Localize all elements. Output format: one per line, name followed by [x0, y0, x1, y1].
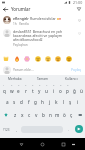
button[interactable]: Shift: [0, 108, 11, 121]
button[interactable]: Like comment: [77, 16, 82, 24]
button[interactable]: Recent apps: [59, 138, 68, 150]
button[interactable]: Share: [73, 5, 85, 13]
button[interactable]: ş: [67, 96, 74, 108]
staticText: ü: [80, 88, 83, 94]
button[interactable]: 4: [22, 83, 29, 96]
button[interactable]: b: [40, 108, 47, 121]
staticText: ç: [70, 112, 73, 118]
staticText: Kullanıcı: [65, 77, 78, 81]
button[interactable]: Emoji reaction: [24, 56, 30, 62]
staticText: 9: [60, 84, 62, 87]
button[interactable]: s: [11, 96, 18, 108]
button[interactable]: 9: [57, 83, 64, 96]
staticText: Tamam: [37, 77, 49, 81]
staticText: u: [45, 88, 48, 94]
staticText: w: [10, 88, 14, 94]
staticText: .: [68, 127, 69, 132]
button[interactable]: ü: [78, 83, 85, 96]
staticText: ğ: [73, 88, 76, 94]
button[interactable]: 8: [50, 83, 57, 96]
button[interactable]: 3: [15, 83, 22, 96]
staticText: Yorum ekle...: [13, 67, 71, 72]
button[interactable]: h: [39, 96, 46, 108]
button[interactable]: Yanıtla: [19, 22, 29, 26]
staticText: e: [17, 88, 20, 94]
staticText: f: [28, 99, 30, 105]
button[interactable]: x: [19, 108, 26, 121]
staticText: Merhaba: [8, 77, 22, 81]
button[interactable]: v: [33, 108, 40, 121]
button[interactable]: Emoji reaction: [45, 56, 51, 62]
button[interactable]: f: [25, 96, 32, 108]
button[interactable]: ğ: [71, 83, 78, 96]
button[interactable]: c: [26, 108, 33, 121]
button[interactable]: Like comment: [77, 29, 82, 37]
button[interactable]: Emoji reaction: [14, 56, 20, 62]
staticText: x: [21, 112, 24, 118]
staticText: ö: [63, 112, 66, 118]
button[interactable]: a: [4, 96, 11, 108]
button[interactable]: 0: [64, 83, 71, 96]
staticText: 21:00: [73, 0, 83, 5]
button[interactable]: Backspace: [75, 108, 85, 121]
staticText: eflengirlr: [13, 16, 29, 21]
button[interactable]: g: [32, 96, 39, 108]
button[interactable]: Back: [0, 5, 11, 13]
staticText: Yorumlar: [11, 6, 31, 12]
button[interactable]: n: [47, 108, 54, 121]
button[interactable]: 6: [36, 83, 43, 96]
button[interactable]: l: [60, 96, 67, 108]
button[interactable]: Tamam: [29, 75, 57, 83]
button[interactable]: Kullanıcı: [57, 75, 85, 83]
button[interactable]: j: [46, 96, 53, 108]
button[interactable]: Emoji reaction: [55, 56, 61, 62]
staticText: g: [34, 99, 37, 105]
staticText: deslan8551 Benachust en yoh kacandınas a…: [13, 29, 77, 42]
staticText: r: [25, 88, 27, 94]
staticText: 7: [46, 84, 48, 87]
button[interactable]: 2: [8, 83, 15, 96]
staticText: 8: [53, 84, 55, 87]
staticText: j: [49, 99, 51, 105]
button[interactable]: 1: [0, 83, 8, 96]
button[interactable]: Back: [17, 138, 26, 150]
staticText: o: [59, 88, 62, 94]
button[interactable]: Emoji reaction: [66, 56, 72, 62]
button[interactable]: Paylaş: [71, 67, 82, 72]
staticText: q: [3, 88, 6, 94]
staticText: a: [6, 99, 9, 105]
button[interactable]: m: [54, 108, 61, 121]
button[interactable]: i: [74, 96, 81, 108]
staticText: i: [53, 88, 55, 94]
button[interactable]: ?123: [0, 124, 13, 135]
staticText: n: [49, 112, 52, 118]
button[interactable]: ö: [61, 108, 68, 121]
button[interactable]: Comma: [12, 124, 20, 135]
staticText: 2: [11, 84, 13, 87]
button[interactable]: Emoji reaction: [3, 56, 9, 62]
button[interactable]: Send: [73, 123, 84, 134]
button[interactable]: ç: [68, 108, 75, 121]
button[interactable]: 7: [43, 83, 50, 96]
button[interactable]: Merhaba: [0, 75, 29, 83]
button[interactable]: z: [11, 108, 19, 121]
staticText: c: [28, 112, 31, 118]
staticText: v: [35, 112, 38, 118]
staticText: s: [13, 99, 16, 105]
button[interactable]: Emoji reaction: [35, 56, 41, 62]
staticText: k: [55, 99, 58, 105]
button[interactable]: Home: [38, 138, 47, 150]
staticText: 4: [25, 84, 27, 87]
button[interactable]: k: [53, 96, 60, 108]
staticText: m: [55, 112, 60, 118]
staticText: 1: [3, 84, 5, 87]
staticText: p: [66, 88, 69, 94]
button[interactable]: Paylaşhan: [13, 43, 28, 47]
button[interactable]: 5: [29, 83, 36, 96]
staticText: l: [63, 99, 65, 105]
button[interactable]: Hide keyboard: [69, 138, 78, 150]
staticText: 5: [32, 84, 34, 87]
button[interactable]: d: [18, 96, 25, 108]
